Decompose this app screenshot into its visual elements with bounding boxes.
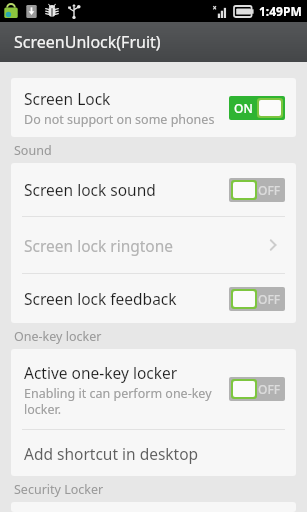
button[interactable]: Toggle off — [229, 377, 285, 401]
staticText: ScreenUnlock(Fruit) — [14, 31, 161, 53]
staticText: Screen lock sound — [24, 179, 156, 200]
staticText: Screen Lock — [24, 88, 111, 109]
button[interactable]: Screen Lock — [11, 78, 296, 137]
button[interactable]: Open screen lock ringtone — [261, 233, 285, 257]
staticText: Add shortcut in desktop — [24, 443, 199, 464]
staticText: 1:49PM — [259, 3, 302, 19]
button[interactable]: Screen lock ringtone — [11, 217, 296, 273]
staticText: Sound — [14, 142, 52, 159]
button[interactable]: Toggle off — [229, 287, 285, 311]
staticText: Do not support on some phones — [24, 111, 215, 128]
button[interactable]: Screen Lock on — [229, 96, 285, 120]
button[interactable]: Screen lock sound — [11, 163, 296, 216]
button[interactable]: Add shortcut in desktop — [11, 430, 296, 476]
button[interactable]: Active one-key locker — [11, 349, 296, 429]
staticText: ON — [234, 100, 253, 116]
staticText: One-key locker — [14, 328, 102, 345]
staticText: Active one-key locker — [24, 362, 178, 383]
staticText: Screen lock feedback — [24, 288, 177, 309]
staticText: OFF — [258, 182, 281, 198]
button[interactable]: Toggle off — [229, 178, 285, 202]
staticText: OFF — [258, 381, 281, 397]
staticText: OFF — [258, 291, 281, 307]
button[interactable]: Screen lock feedback — [11, 274, 296, 323]
staticText: Security Locker — [14, 481, 104, 498]
staticText: Enabling it can perform one-key locker. — [24, 385, 212, 417]
staticText: Screen lock ringtone — [24, 235, 174, 256]
